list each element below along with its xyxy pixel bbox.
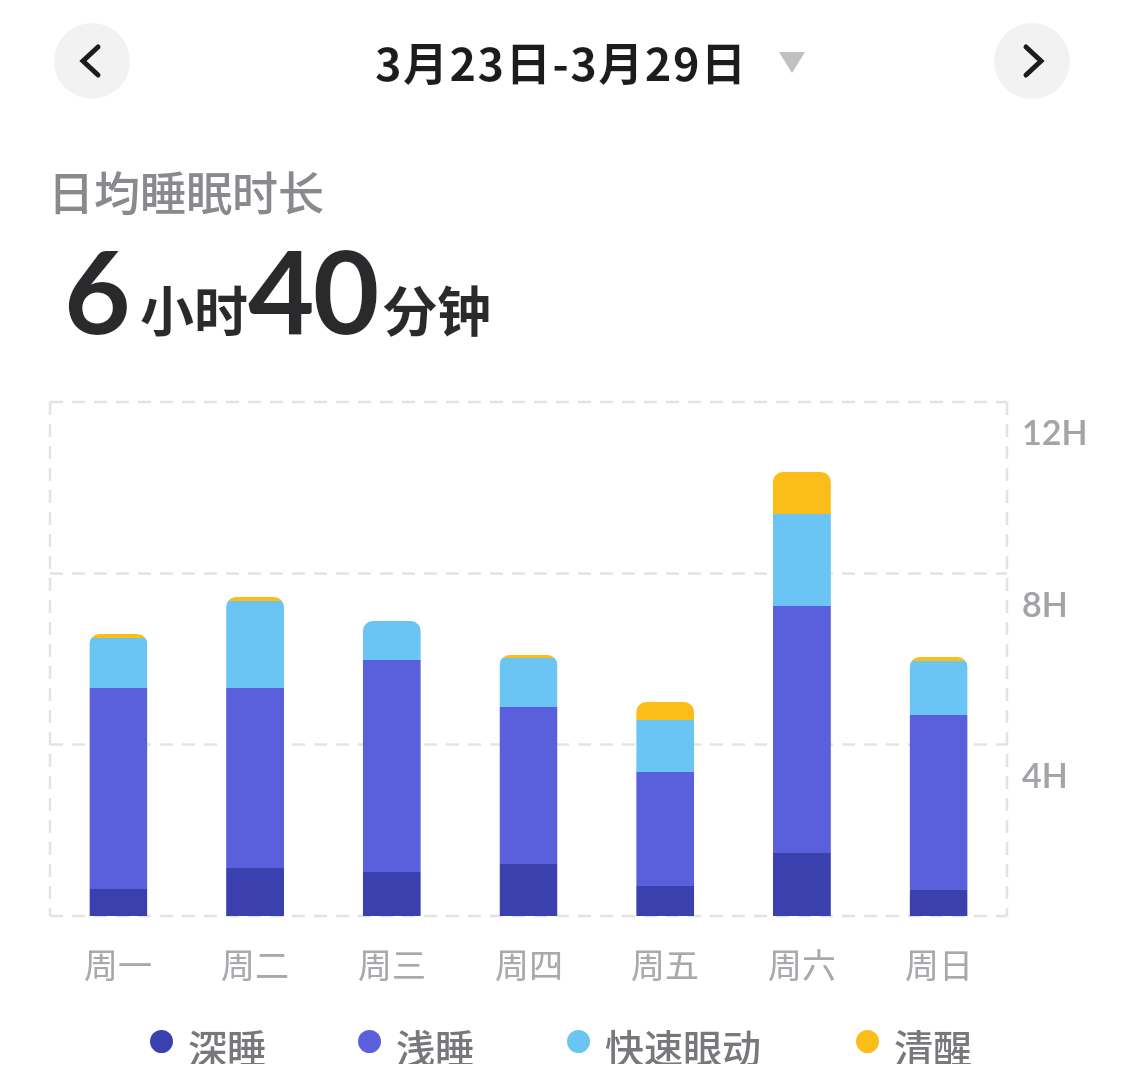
staticText: 小时 <box>140 269 248 347</box>
staticText: 快速眼动 <box>605 1018 762 1064</box>
staticText: 周三 <box>358 939 426 988</box>
button[interactable] <box>54 23 130 99</box>
staticText: 深睡 <box>188 1018 267 1064</box>
staticText: 40 <box>248 220 378 358</box>
staticText: 清醒 <box>894 1018 973 1064</box>
staticText: 4H <box>1022 754 1068 795</box>
staticText: 日均睡眠时长 <box>48 157 324 224</box>
button[interactable]: 清醒 <box>856 1018 973 1064</box>
staticText: 6 <box>64 220 131 358</box>
staticText: 周日 <box>905 939 973 988</box>
button[interactable]: 浅睡 <box>358 1018 475 1064</box>
button[interactable]: 3月23日-3月29日 <box>0 0 1123 122</box>
staticText: 3月23日-3月29日 <box>375 29 748 94</box>
staticText: 周二 <box>221 939 289 988</box>
staticText: 浅睡 <box>396 1018 475 1064</box>
button[interactable]: 深睡 <box>150 1018 267 1064</box>
staticText: 周四 <box>495 939 563 988</box>
staticText: 周六 <box>768 939 836 988</box>
staticText: 12H <box>1022 411 1088 452</box>
button[interactable] <box>994 23 1070 99</box>
staticText: 周一 <box>84 939 152 988</box>
staticText: 周五 <box>631 939 699 988</box>
staticText: 分钟 <box>383 269 491 347</box>
staticText: 8H <box>1022 583 1068 624</box>
button[interactable]: 快速眼动 <box>567 1018 762 1064</box>
